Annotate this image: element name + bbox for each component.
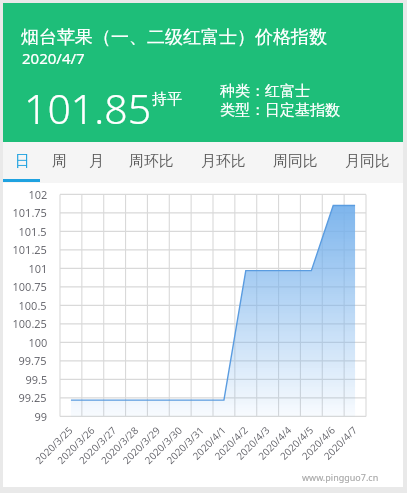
button[interactable]: 周环比	[115, 142, 187, 183]
staticText: 月环比	[201, 152, 246, 171]
staticText: 周环比	[129, 152, 174, 171]
staticText: 月同比	[345, 152, 390, 171]
button[interactable]: 周	[41, 142, 78, 183]
staticText: 持平	[152, 90, 182, 109]
staticText: www.pingguo7.cn	[302, 471, 379, 483]
staticText: 类型：日定基指数	[220, 101, 340, 120]
staticText: 101.85	[24, 80, 152, 136]
staticText: 月	[89, 152, 104, 171]
button[interactable]: 周同比	[259, 142, 331, 183]
button[interactable]: 月环比	[187, 142, 259, 183]
staticText: 周	[52, 152, 67, 171]
staticText: 周同比	[273, 152, 318, 171]
button[interactable]: 月	[78, 142, 115, 183]
button[interactable]: 烟台苹果（一、二级红富士）价格指数	[3, 3, 403, 142]
button[interactable]: 月同比	[331, 142, 403, 183]
staticText: 种类：红富士	[220, 82, 310, 101]
staticText: 烟台苹果（一、二级红富士）价格指数	[21, 26, 327, 49]
button[interactable]: 日	[3, 142, 41, 183]
staticText: 日	[15, 152, 30, 171]
staticText: 2020/4/7	[22, 48, 85, 68]
